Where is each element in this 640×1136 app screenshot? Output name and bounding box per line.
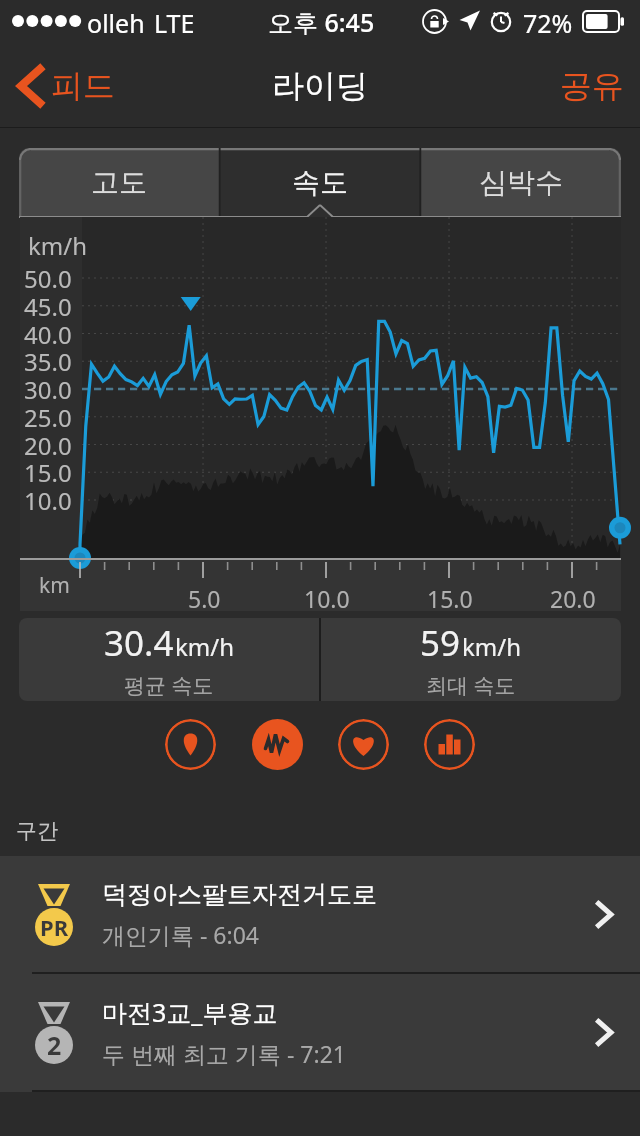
- button[interactable]: 59: [321, 618, 621, 701]
- staticText: 45.0: [24, 290, 72, 323]
- staticText: 15.0: [24, 456, 72, 489]
- staticText: 10.0: [24, 484, 72, 517]
- button[interactable]: 공유: [540, 44, 640, 128]
- staticText: 20.0: [550, 583, 596, 614]
- button[interactable]: Analysis: [424, 719, 475, 770]
- button[interactable]: 30.4: [19, 618, 319, 701]
- staticText: 15.0: [427, 583, 473, 614]
- staticText: 속도: [292, 165, 348, 200]
- staticText: 72%: [523, 6, 573, 40]
- staticText: PR: [40, 912, 69, 942]
- staticText: 30.4: [104, 619, 174, 667]
- staticText: 피드: [51, 66, 115, 106]
- staticText: 5.0: [188, 583, 221, 614]
- button[interactable]: 고도: [19, 148, 219, 217]
- staticText: km/h: [462, 630, 522, 663]
- staticText: 마전3교_부용교: [102, 995, 278, 1029]
- staticText: 30.0: [24, 373, 72, 406]
- staticText: 고도: [91, 165, 147, 200]
- staticText: 10.0: [304, 583, 350, 614]
- staticText: 개인기록 - 6:04: [102, 919, 259, 950]
- staticText: 25.0: [24, 401, 72, 434]
- button[interactable]: 2: [0, 974, 640, 1090]
- button[interactable]: 피드: [10, 44, 125, 128]
- staticText: 40.0: [24, 318, 72, 351]
- staticText: 라이딩: [272, 66, 368, 106]
- staticText: 덕정아스팔트자전거도로: [102, 879, 377, 910]
- staticText: 평균 속도: [124, 671, 214, 700]
- staticText: 두 번째 최고 기록 - 7:21: [102, 1038, 346, 1069]
- staticText: 50.0: [24, 262, 72, 295]
- staticText: 35.0: [24, 345, 72, 378]
- button[interactable]: 속도: [219, 148, 420, 217]
- staticText: 최대 속도: [426, 671, 516, 700]
- staticText: 20.0: [24, 429, 72, 462]
- staticText: LTE: [154, 6, 195, 40]
- staticText: km: [39, 571, 70, 600]
- staticText: 심박수: [479, 165, 563, 200]
- staticText: 오후 6:45: [268, 5, 375, 39]
- button[interactable]: 심박수: [420, 148, 621, 217]
- staticText: 59: [420, 619, 461, 667]
- staticText: 2: [47, 1028, 62, 1062]
- staticText: 구간: [16, 818, 58, 844]
- button[interactable]: Heart rate: [338, 719, 389, 770]
- staticText: km/h: [175, 630, 235, 663]
- button[interactable]: PR: [0, 856, 640, 972]
- staticText: 공유: [560, 66, 624, 106]
- button[interactable]: Speed: [252, 719, 303, 770]
- staticText: km/h: [28, 229, 88, 262]
- staticText: olleh: [87, 6, 145, 40]
- button[interactable]: Map: [165, 719, 216, 770]
